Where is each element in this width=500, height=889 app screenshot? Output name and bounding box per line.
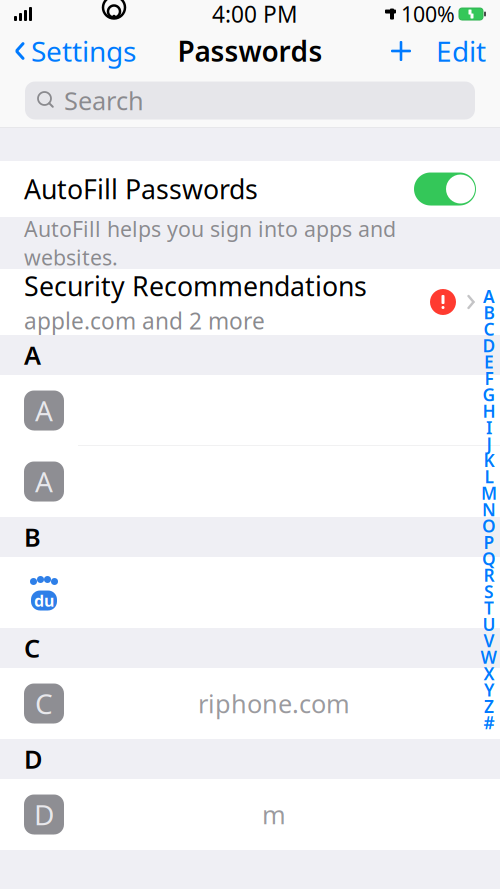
staticText: C: [35, 685, 53, 722]
button[interactable]: #: [478, 714, 500, 731]
button[interactable]: Search: [25, 81, 475, 119]
button[interactable]: Q: [478, 550, 500, 567]
staticText: Settings: [31, 32, 136, 70]
staticText: C: [24, 631, 40, 665]
button[interactable]: Security Recommendations: [0, 269, 500, 335]
staticText: F: [484, 367, 493, 390]
staticText: A: [35, 392, 53, 429]
staticText: D: [34, 796, 54, 833]
staticText: m: [262, 798, 286, 831]
staticText: K: [483, 449, 494, 472]
staticText: D: [482, 334, 495, 357]
button[interactable]: M: [478, 485, 500, 501]
button[interactable]: D: [478, 337, 500, 354]
button[interactable]: A: [478, 288, 500, 304]
button[interactable]: O: [478, 518, 500, 534]
button[interactable]: Edit: [422, 28, 500, 74]
staticText: E: [484, 350, 494, 373]
staticText: S: [484, 580, 494, 603]
button[interactable]: B: [478, 304, 500, 321]
button[interactable]: Add Password: [380, 28, 422, 74]
staticText: B: [24, 520, 41, 554]
button[interactable]: I: [478, 419, 500, 436]
button[interactable]: D: [0, 779, 500, 850]
button[interactable]: C: [0, 668, 500, 739]
staticText: Q: [482, 547, 496, 570]
staticText: T: [484, 596, 494, 619]
staticText: du: [34, 590, 54, 611]
button[interactable]: F: [478, 370, 500, 386]
staticText: D: [24, 742, 43, 776]
button[interactable]: H: [478, 403, 500, 419]
button[interactable]: J: [478, 436, 500, 452]
staticText: A: [483, 285, 495, 308]
staticText: Y: [484, 678, 494, 701]
staticText: P: [483, 531, 494, 554]
staticText: Z: [484, 695, 494, 718]
staticText: A: [24, 338, 41, 372]
staticText: Search: [64, 84, 144, 117]
staticText: X: [483, 662, 494, 685]
button[interactable]: K: [478, 452, 500, 468]
button[interactable]: Settings: [0, 28, 150, 74]
button[interactable]: Y: [478, 682, 500, 698]
staticText: U: [482, 613, 495, 636]
staticText: 4:00 PM: [212, 0, 298, 29]
button[interactable]: W: [478, 649, 500, 665]
staticText: Security Recommendations: [24, 268, 367, 304]
button[interactable]: N: [478, 501, 500, 518]
staticText: I: [486, 416, 492, 439]
button[interactable]: T: [478, 600, 500, 616]
staticText: N: [482, 498, 496, 521]
staticText: apple.com and 2 more: [24, 306, 265, 336]
button[interactable]: Baidu password entry: [0, 557, 500, 628]
button[interactable]: AutoFill Passwords: [414, 172, 476, 205]
staticText: O: [482, 514, 496, 537]
staticText: AutoFill Passwords: [24, 171, 258, 207]
staticText: J: [486, 432, 491, 455]
staticText: V: [483, 629, 494, 652]
button[interactable]: R: [478, 567, 500, 583]
staticText: G: [482, 383, 495, 406]
staticText: B: [483, 301, 494, 324]
button[interactable]: A: [0, 446, 500, 517]
button[interactable]: P: [478, 534, 500, 550]
button[interactable]: X: [478, 665, 500, 682]
staticText: riphone.com: [198, 687, 350, 720]
staticText: L: [484, 465, 493, 488]
button[interactable]: E: [478, 354, 500, 370]
staticText: M: [481, 481, 497, 504]
button[interactable]: V: [478, 632, 500, 649]
staticText: #: [483, 711, 494, 734]
staticText: A: [35, 463, 53, 500]
button[interactable]: C: [478, 321, 500, 337]
staticText: Edit: [436, 32, 486, 70]
staticText: R: [483, 563, 494, 586]
staticText: H: [482, 399, 495, 422]
button[interactable]: U: [478, 616, 500, 632]
button[interactable]: AutoFill Passwords: [0, 161, 500, 217]
staticText: Passwords: [177, 32, 322, 70]
button[interactable]: Z: [478, 698, 500, 714]
staticText: 100%: [401, 0, 455, 28]
button[interactable]: G: [478, 386, 500, 403]
staticText: C: [483, 317, 494, 340]
button[interactable]: L: [478, 468, 500, 485]
button[interactable]: A: [0, 375, 500, 446]
staticText: W: [480, 645, 497, 668]
button[interactable]: S: [478, 583, 500, 600]
staticText: AutoFill helps you sign into apps and we…: [24, 215, 396, 271]
